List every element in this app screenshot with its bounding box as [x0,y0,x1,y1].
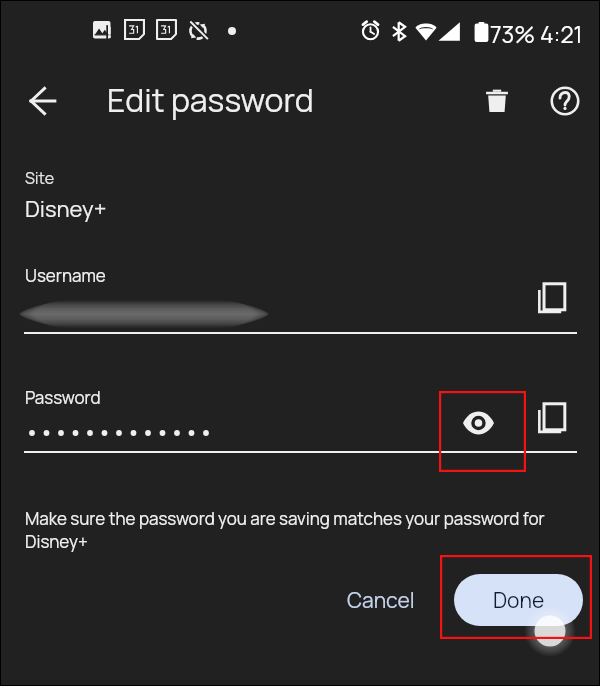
button[interactable]: Help [544,80,586,122]
staticText: Password [25,386,101,409]
button[interactable]: Password [17,378,437,453]
staticText: 4:21 [540,18,583,49]
button[interactable]: Copy password [524,390,576,442]
staticText: Edit password [107,78,314,122]
button[interactable]: Cancel [331,575,430,625]
button[interactable]: Back [19,79,63,123]
staticText: 73% [490,18,535,49]
staticText: Make sure the password you are saving ma… [25,507,559,553]
button[interactable]: Show password [453,397,505,449]
button[interactable]: Copy username [524,270,576,322]
button[interactable]: Delete password [476,80,518,122]
staticText: Username [25,264,106,287]
button[interactable]: Username [17,256,507,334]
staticText: Disney+ [25,194,107,224]
button[interactable]: Site [17,159,317,229]
staticText: Done [493,586,545,615]
staticText: Cancel [347,586,415,615]
staticText: Site [25,167,55,189]
button[interactable]: Done [454,574,583,626]
